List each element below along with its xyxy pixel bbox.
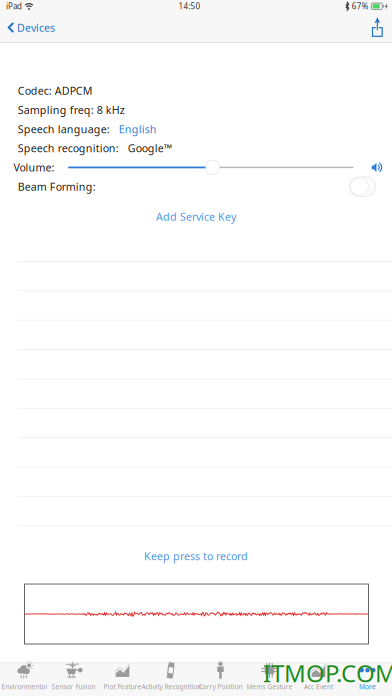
staticText: 8 kHz xyxy=(97,103,125,117)
button[interactable]: Acc Event xyxy=(294,663,343,696)
button[interactable]: Mems Gesture xyxy=(245,663,294,696)
button[interactable]: Add Service Key xyxy=(0,208,392,224)
button[interactable]: Environmental xyxy=(0,663,49,696)
staticText: Google™ xyxy=(128,141,172,155)
staticText: iPad xyxy=(6,1,22,11)
staticText: Volume: xyxy=(13,160,54,174)
staticText: Devices xyxy=(17,20,55,35)
staticText: Sensor Fusion xyxy=(51,682,95,691)
button[interactable]: More xyxy=(343,663,392,696)
staticText: Beam Forming: xyxy=(18,179,96,194)
staticText: Carry Position xyxy=(198,682,242,691)
staticText: Acc Event xyxy=(304,682,333,691)
staticText: Speech recognition: xyxy=(18,141,128,155)
button[interactable]: Sensor Fusion xyxy=(49,663,98,696)
staticText: Environmental xyxy=(1,682,47,691)
staticText: ADPCM xyxy=(55,83,93,98)
staticText: Activity Recognition xyxy=(141,682,201,691)
staticText: ITMOP.COM xyxy=(263,657,392,689)
button[interactable]: Beam Forming xyxy=(349,177,375,196)
staticText: English xyxy=(119,122,157,136)
staticText: 67% xyxy=(352,1,369,11)
staticText: Plot Feature xyxy=(103,682,141,691)
button[interactable]: Carry Position xyxy=(196,663,245,696)
staticText: More xyxy=(359,682,376,691)
button[interactable]: Keep press to record xyxy=(0,548,392,564)
staticText: Keep press to record xyxy=(144,549,248,563)
staticText: Speech language: xyxy=(18,122,119,136)
staticText: Codec: xyxy=(18,83,55,98)
button[interactable]: Share xyxy=(363,12,392,42)
staticText: Sampling freq: xyxy=(18,103,97,117)
button[interactable]: Activity Recognition xyxy=(147,663,196,696)
button[interactable]: Devices xyxy=(0,12,65,42)
staticText: Mems Gesture xyxy=(246,682,292,691)
staticText: 14:50 xyxy=(178,1,200,11)
staticText: Add Service Key xyxy=(156,209,236,224)
button[interactable]: Plot Feature xyxy=(98,663,147,696)
